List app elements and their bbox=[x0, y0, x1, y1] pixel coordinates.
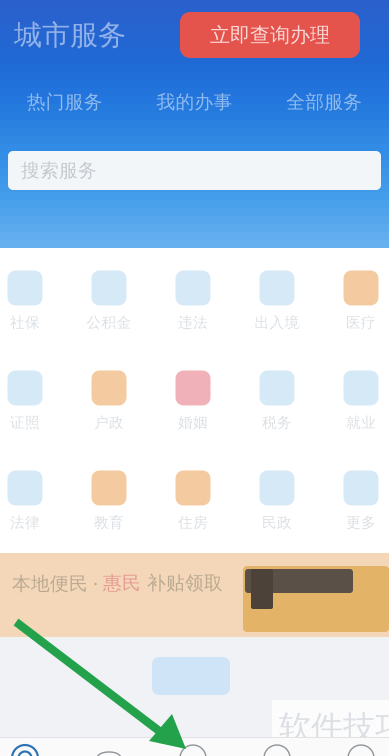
staticText: 补贴领取 bbox=[141, 571, 223, 594]
staticText: 本地便民 · bbox=[12, 571, 103, 595]
staticText: 就业 bbox=[346, 413, 376, 431]
staticText: 惠民 bbox=[103, 571, 141, 594]
button[interactable]: 出入境 bbox=[243, 272, 311, 330]
staticText: 法律 bbox=[10, 513, 40, 531]
staticText: 立即查询办理 bbox=[210, 23, 330, 47]
button[interactable]: 更多 bbox=[327, 472, 389, 530]
button[interactable]: 民政 bbox=[243, 472, 311, 530]
button[interactable]: 全部服务 bbox=[259, 90, 389, 114]
button[interactable]: 医疗 bbox=[327, 272, 389, 330]
button[interactable]: Profile bbox=[347, 744, 375, 756]
button[interactable]: Home bbox=[11, 744, 39, 756]
staticText: 社保 bbox=[10, 313, 40, 331]
button[interactable]: 法律 bbox=[0, 472, 59, 530]
button[interactable]: 我的办事 bbox=[130, 90, 259, 114]
button[interactable]: 婚姻 bbox=[159, 372, 227, 430]
staticText: 公积金 bbox=[86, 313, 131, 331]
button[interactable]: 税务 bbox=[243, 372, 311, 430]
button[interactable]: Search services bbox=[8, 151, 381, 190]
staticText: 住房 bbox=[178, 513, 208, 531]
staticText: 搜索服务 bbox=[21, 159, 97, 182]
button[interactable]: 公积金 bbox=[75, 272, 143, 330]
button[interactable]: 热门服务 bbox=[0, 90, 130, 114]
staticText: 我的办事 bbox=[156, 90, 232, 113]
button[interactable]: 户政 bbox=[75, 372, 143, 430]
staticText: 户政 bbox=[94, 413, 124, 431]
button[interactable]: 违法 bbox=[159, 272, 227, 330]
button[interactable]: 本地便民 · bbox=[12, 572, 223, 594]
staticText: 婚姻 bbox=[178, 413, 208, 431]
staticText: 民政 bbox=[262, 513, 292, 531]
staticText: 更多 bbox=[346, 513, 376, 531]
staticText: 医疗 bbox=[346, 313, 376, 331]
staticText: 证照 bbox=[10, 413, 40, 431]
button[interactable]: Services bbox=[263, 744, 291, 756]
staticText: 软件技巧 bbox=[279, 708, 389, 747]
staticText: 热门服务 bbox=[27, 90, 103, 113]
staticText: 出入境 bbox=[254, 313, 299, 331]
button[interactable]: 社保 bbox=[0, 272, 59, 330]
staticText: 全部服务 bbox=[286, 90, 362, 113]
button[interactable]: 住房 bbox=[159, 472, 227, 530]
staticText: 城市服务 bbox=[14, 18, 126, 52]
staticText: 违法 bbox=[178, 313, 208, 331]
button[interactable]: 立即查询办理 bbox=[180, 12, 360, 58]
button[interactable]: Discover bbox=[179, 744, 207, 756]
staticText: 税务 bbox=[262, 413, 292, 431]
button[interactable]: 就业 bbox=[327, 372, 389, 430]
button[interactable]: 教育 bbox=[75, 472, 143, 530]
button[interactable]: Messages bbox=[95, 744, 123, 756]
staticText: 教育 bbox=[94, 513, 124, 531]
button[interactable]: 证照 bbox=[0, 372, 59, 430]
